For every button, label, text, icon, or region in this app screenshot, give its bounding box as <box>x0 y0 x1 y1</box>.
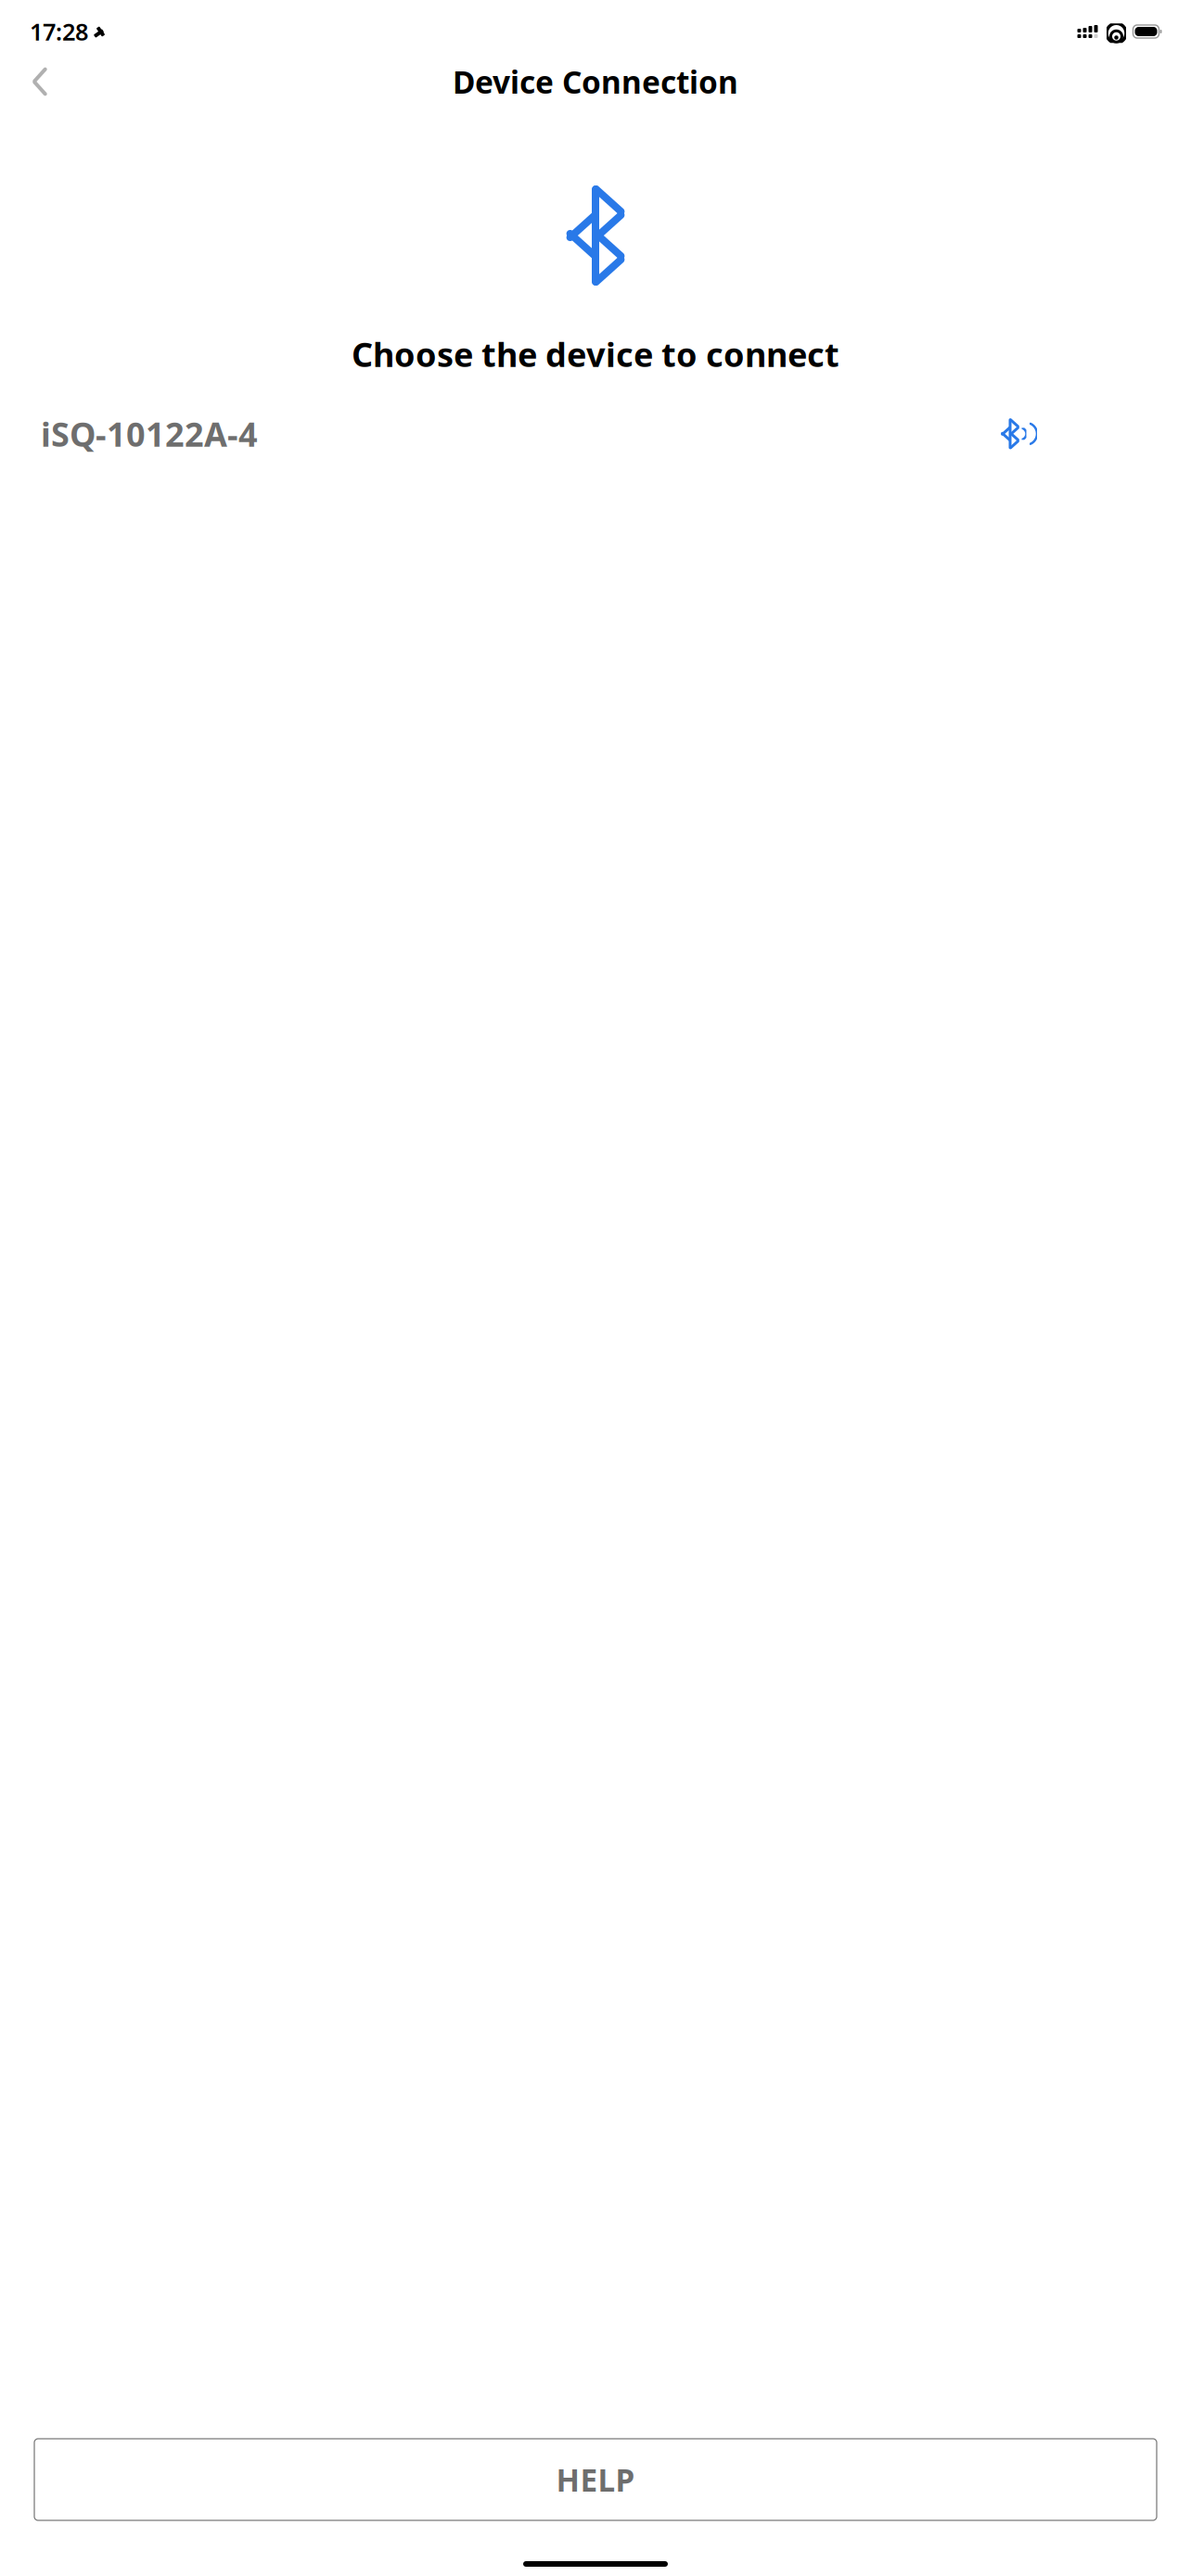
staticText: HELP <box>556 2459 635 2500</box>
staticText: 17:28 <box>30 16 88 47</box>
button[interactable]: iSQ-10122A-4 <box>0 404 1191 463</box>
button[interactable]: Back <box>17 56 63 108</box>
button[interactable]: HELP <box>34 2439 1157 2520</box>
staticText: Device Connection <box>453 61 738 102</box>
staticText: Choose the device to connect <box>352 332 839 376</box>
staticText: iSQ-10122A-4 <box>41 412 258 456</box>
